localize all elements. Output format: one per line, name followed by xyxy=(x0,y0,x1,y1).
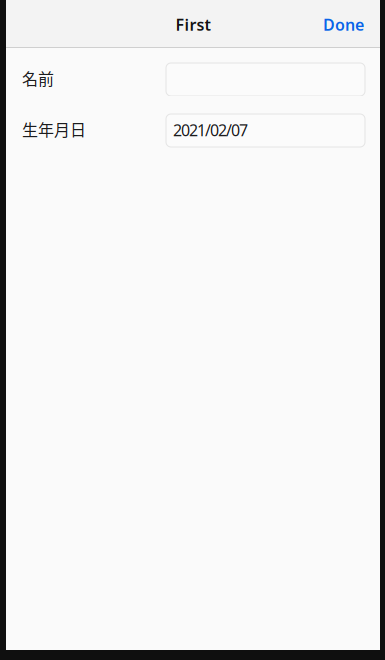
staticText: 名前 xyxy=(22,66,54,90)
staticText: First xyxy=(175,14,210,35)
button[interactable]: Done xyxy=(315,3,372,44)
button[interactable]: 名前 xyxy=(166,63,365,96)
button[interactable]: 生年月日 xyxy=(166,114,365,147)
staticText: 2021/02/07 xyxy=(173,119,248,141)
staticText: Done xyxy=(323,14,364,35)
staticText: 生年月日 xyxy=(22,117,86,141)
